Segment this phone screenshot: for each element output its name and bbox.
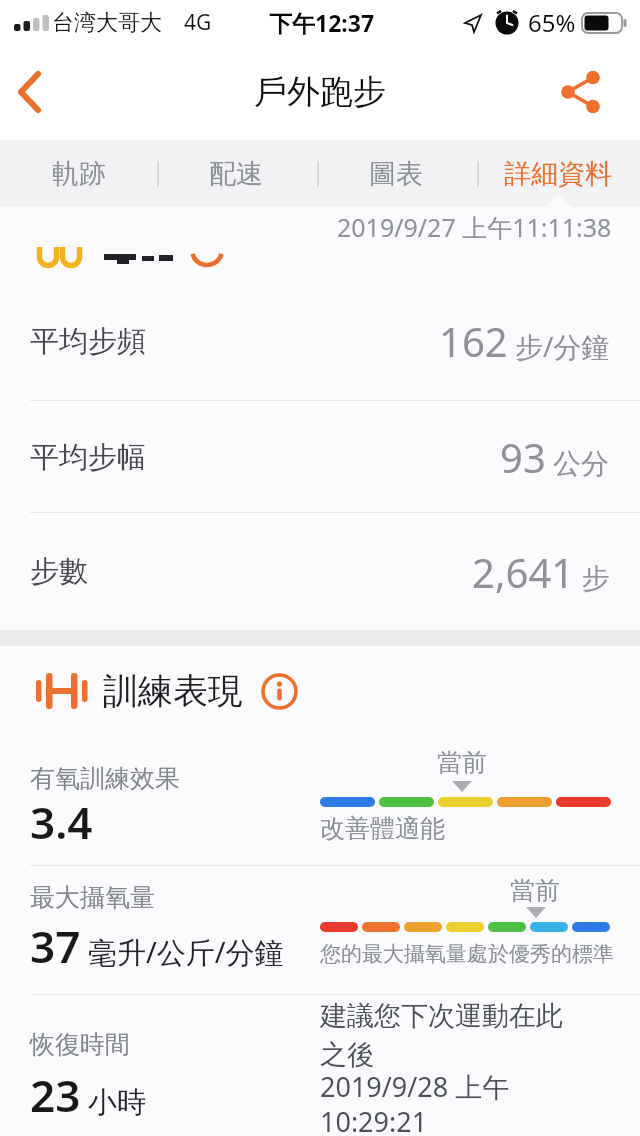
staticText: 詳細資料 <box>504 157 612 191</box>
button[interactable] <box>259 671 299 711</box>
staticText: 軌跡 <box>52 157 106 191</box>
staticText: 最大攝氧量 <box>30 882 155 913</box>
staticText: 3.4 <box>30 792 93 852</box>
button[interactable] <box>558 69 604 115</box>
staticText: 當前 <box>510 875 560 906</box>
button[interactable]: 軌跡 <box>19 140 139 207</box>
staticText: 圖表 <box>369 157 423 191</box>
staticText: 2,641 步 <box>472 545 610 599</box>
staticText: 配速 <box>209 157 263 191</box>
button[interactable]: 詳細資料 <box>478 140 638 207</box>
button[interactable]: 圖表 <box>336 140 456 207</box>
staticText: 下午12:37 <box>269 7 375 38</box>
staticText: 改善體適能 <box>320 813 445 844</box>
button[interactable]: 平均步幅 <box>0 401 640 513</box>
button[interactable] <box>8 70 52 114</box>
staticText: 93 公分 <box>500 430 610 484</box>
staticText: 建議您下次運動在此 之後 <box>320 999 563 1072</box>
staticText: 您的最大攝氧量處於優秀的標準 <box>320 941 614 967</box>
staticText: 4G <box>184 8 212 37</box>
staticText: 台湾大哥大 <box>52 9 162 37</box>
staticText: 平均步頻 <box>30 323 146 360</box>
staticText: 訓練表現 <box>103 669 243 713</box>
staticText: 2019/9/28 上午 10:29:21 <box>320 1068 510 1136</box>
staticText: 恢復時間 <box>30 1029 130 1060</box>
button[interactable]: 步數 <box>0 513 640 630</box>
staticText: 步數 <box>30 553 88 590</box>
staticText: 平均步幅 <box>30 439 146 476</box>
staticText: 2019/9/27 上午11:11:38 <box>337 210 612 244</box>
staticText: 戶外跑步 <box>254 71 386 113</box>
staticText: 23 小時 <box>30 1065 146 1125</box>
staticText: 37 毫升/公斤/分鐘 <box>30 916 284 976</box>
button[interactable]: 配速 <box>176 140 296 207</box>
button[interactable]: 平均步頻 <box>0 281 640 401</box>
staticText: 當前 <box>437 747 487 778</box>
staticText: 有氧訓練效果 <box>30 763 180 794</box>
staticText: 162 步/分鐘 <box>439 314 610 368</box>
staticText: 65% <box>528 6 576 39</box>
